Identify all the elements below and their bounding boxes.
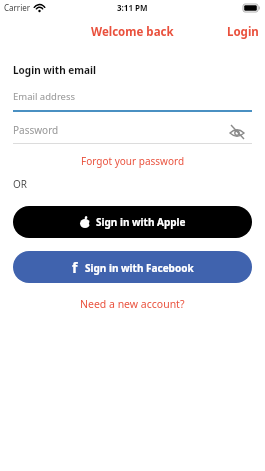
staticText: Email address: [13, 90, 76, 103]
staticText: Carrier: [4, 2, 31, 13]
button[interactable]: Need a new account?: [13, 297, 252, 311]
staticText: 3:11 PM: [117, 2, 148, 13]
staticText: Password: [13, 123, 59, 137]
staticText: Welcome back: [91, 24, 174, 40]
staticText: Forgot your password: [81, 154, 185, 168]
button[interactable]: f: [13, 251, 252, 283]
staticText: OR: [13, 177, 28, 191]
staticText: Need a new account?: [80, 297, 185, 311]
button[interactable]: Sign in with Apple: [13, 206, 252, 238]
button[interactable]: Forgot your password: [13, 154, 252, 168]
button[interactable]: Login: [227, 24, 259, 40]
staticText: f: [72, 258, 78, 277]
staticText: Sign in with Facebook: [85, 261, 194, 275]
staticText: Login with email: [13, 63, 96, 77]
staticText: Sign in with Apple: [96, 215, 186, 229]
staticText: Login: [227, 24, 259, 40]
